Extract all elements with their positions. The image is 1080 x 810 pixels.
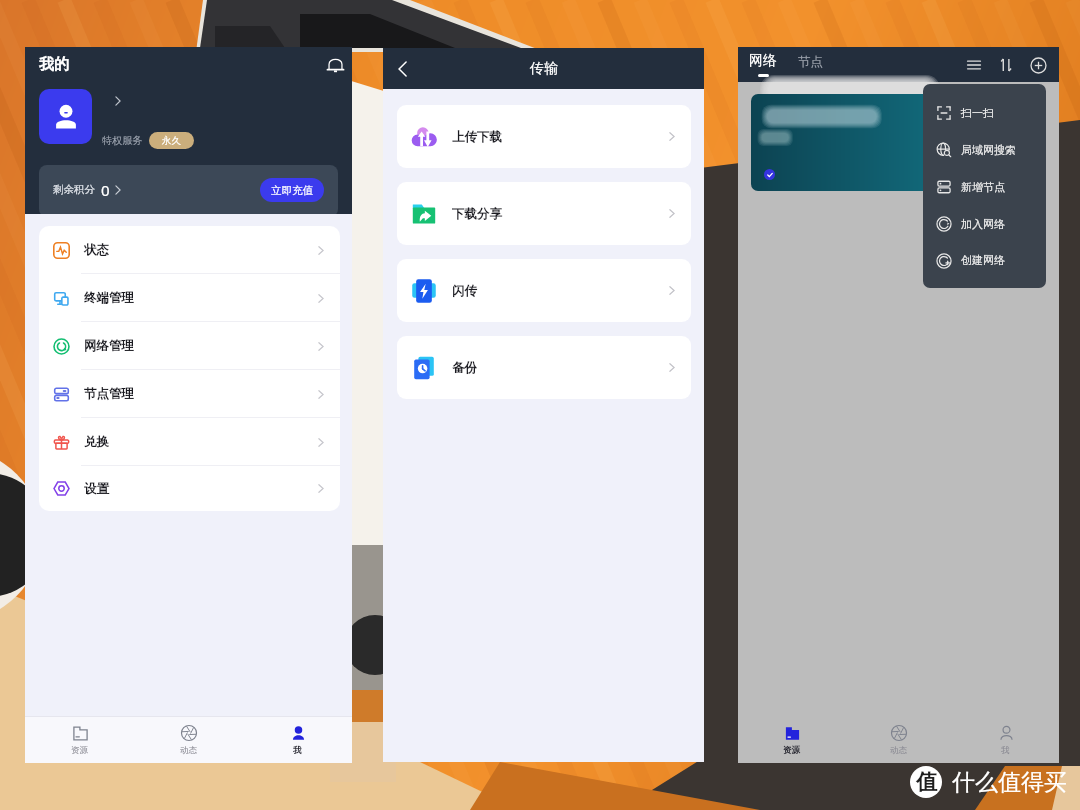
- staticText: 传输: [530, 60, 558, 78]
- button[interactable]: 立即充值: [260, 178, 324, 202]
- staticText: 网络: [749, 52, 777, 70]
- button[interactable]: 新增节点: [923, 168, 1046, 205]
- button[interactable]: 节点: [798, 54, 823, 76]
- button[interactable]: 状态: [39, 226, 340, 274]
- button[interactable]: 下载分享: [397, 182, 691, 245]
- button[interactable]: 扫一扫: [923, 94, 1046, 131]
- staticText: 节点管理: [84, 386, 134, 402]
- button[interactable]: 上传下载: [397, 105, 691, 168]
- staticText: 备份: [452, 360, 477, 376]
- staticText: 新增节点: [961, 180, 1005, 194]
- button[interactable]: 备份: [397, 336, 691, 399]
- staticText: 值: [916, 769, 937, 795]
- button[interactable]: 网络: [749, 52, 777, 77]
- button[interactable]: Add: [1026, 53, 1050, 77]
- staticText: 特权服务: [102, 134, 143, 147]
- button[interactable]: 剩余积分: [39, 165, 338, 214]
- staticText: 动态: [180, 745, 197, 756]
- staticText: 终端管理: [84, 290, 134, 306]
- button[interactable]: 加入网络: [923, 205, 1046, 242]
- button[interactable]: Menu: [962, 53, 986, 77]
- button[interactable]: Sort: [994, 53, 1018, 77]
- button[interactable]: 设置: [39, 466, 340, 511]
- staticText: 剩余积分: [53, 183, 95, 196]
- button[interactable]: 创建网络: [923, 242, 1046, 278]
- staticText: 创建网络: [961, 253, 1005, 267]
- staticText: 我: [293, 745, 302, 756]
- staticText: 状态: [84, 242, 109, 258]
- button[interactable]: Avatar: [39, 89, 92, 144]
- button[interactable]: [751, 94, 935, 191]
- staticText: 我的: [39, 55, 69, 74]
- staticText: 0: [101, 180, 110, 200]
- button[interactable]: Notifications: [322, 52, 348, 78]
- button[interactable]: 节点管理: [39, 370, 340, 418]
- staticText: 网络管理: [84, 338, 134, 354]
- button[interactable]: 资源: [738, 717, 845, 763]
- button[interactable]: 我: [952, 717, 1059, 763]
- staticText: 闪传: [452, 283, 477, 299]
- button[interactable]: 终端管理: [39, 274, 340, 322]
- staticText: 加入网络: [961, 217, 1005, 231]
- staticText: 兑换: [84, 434, 109, 450]
- staticText: 扫一扫: [961, 106, 994, 120]
- button[interactable]: 动态: [134, 717, 243, 763]
- button[interactable]: 网络管理: [39, 322, 340, 370]
- staticText: 动态: [890, 745, 907, 756]
- staticText: 局域网搜索: [961, 143, 1016, 157]
- button[interactable]: 资源: [25, 717, 134, 763]
- staticText: 立即充值: [271, 184, 313, 197]
- staticText: 上传下载: [452, 129, 502, 145]
- staticText: 永久: [162, 135, 181, 147]
- button[interactable]: 我: [243, 717, 352, 763]
- staticText: 下载分享: [452, 206, 502, 222]
- button[interactable]: 局域网搜索: [923, 131, 1046, 168]
- staticText: 我: [1001, 745, 1010, 756]
- button[interactable]: 兑换: [39, 418, 340, 466]
- button[interactable]: 动态: [845, 717, 952, 763]
- button[interactable]: 闪传: [397, 259, 691, 322]
- staticText: 资源: [783, 745, 800, 756]
- staticText: 资源: [71, 745, 88, 756]
- staticText: 什么值得买: [952, 768, 1067, 797]
- button[interactable]: Back: [389, 56, 415, 82]
- staticText: 设置: [84, 481, 109, 497]
- staticText: 节点: [798, 54, 823, 70]
